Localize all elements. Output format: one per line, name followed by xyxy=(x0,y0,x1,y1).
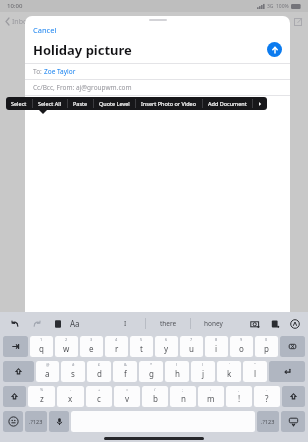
staticText: : xyxy=(210,387,212,392)
button[interactable]: Paste xyxy=(51,317,64,330)
button[interactable]: More xyxy=(253,97,267,110)
button[interactable]: Shift xyxy=(3,386,26,407)
staticText: 10:00 xyxy=(7,2,23,10)
staticText: honey xyxy=(204,319,223,328)
staticText: @ xyxy=(46,362,50,367)
button[interactable]: Cc/Bcc, From: aj@groupwm.com xyxy=(25,80,290,95)
button[interactable]: .?123 xyxy=(257,411,279,432)
button[interactable]: To: xyxy=(25,64,290,79)
button[interactable]: Camera xyxy=(248,317,261,330)
staticText: n xyxy=(181,393,186,404)
button[interactable]: x xyxy=(57,386,84,407)
button[interactable]: j xyxy=(191,361,215,382)
button[interactable]: a xyxy=(36,361,59,382)
button[interactable]: Add Document xyxy=(203,97,252,110)
staticText: & xyxy=(124,362,127,367)
button[interactable]: f xyxy=(113,361,137,382)
button[interactable]: w xyxy=(55,336,78,357)
button[interactable]: i xyxy=(205,336,228,357)
button[interactable]: o xyxy=(230,336,253,357)
staticText: + xyxy=(98,387,101,392)
button[interactable]: Emoji xyxy=(3,411,23,432)
staticText: " xyxy=(254,362,256,367)
button[interactable]: l xyxy=(243,361,267,382)
staticText: ; xyxy=(182,387,184,392)
button[interactable]: u xyxy=(180,336,203,357)
staticText: Select xyxy=(11,100,27,107)
staticText: % xyxy=(40,387,44,392)
button[interactable]: Redo xyxy=(30,317,43,330)
button[interactable]: ? xyxy=(254,386,280,407)
button[interactable]: Shift xyxy=(282,386,305,407)
button[interactable]: m xyxy=(198,386,224,407)
button[interactable]: Shift xyxy=(3,361,34,382)
staticText: l xyxy=(254,368,257,379)
button[interactable]: Undo xyxy=(8,317,21,330)
button[interactable]: I xyxy=(105,312,145,334)
staticText: d xyxy=(97,368,102,379)
button[interactable]: d xyxy=(87,361,111,382)
button[interactable]: Backspace xyxy=(280,336,305,357)
staticText: 3G xyxy=(267,3,274,10)
button[interactable]: p xyxy=(255,336,278,357)
button[interactable]: k xyxy=(217,361,241,382)
button[interactable]: Hide keyboard xyxy=(281,411,305,432)
button[interactable]: v xyxy=(114,386,140,407)
staticText: 100% xyxy=(276,3,289,10)
staticText: 4 xyxy=(115,337,118,342)
staticText: I xyxy=(124,319,127,328)
button[interactable]: Paste xyxy=(68,97,93,110)
button[interactable]: y xyxy=(155,336,178,357)
staticText: Add Document xyxy=(208,100,247,107)
staticText: h xyxy=(175,368,180,379)
button[interactable]: e xyxy=(80,336,103,357)
button[interactable]: Select All xyxy=(33,97,67,110)
button[interactable]: Insert Photo or Video xyxy=(136,97,202,110)
staticText: = xyxy=(126,387,129,392)
button[interactable]: Dictate xyxy=(49,411,69,432)
staticText: Aa xyxy=(70,318,80,329)
staticText: 1 xyxy=(40,337,43,342)
button[interactable]: h xyxy=(165,361,189,382)
button[interactable]: there xyxy=(146,312,190,334)
button[interactable]: g xyxy=(139,361,163,382)
staticText: - xyxy=(70,387,72,392)
button[interactable]: Cancel xyxy=(33,24,57,36)
button[interactable]: Tab xyxy=(3,336,28,357)
staticText: Cc/Bcc, From: aj@groupwm.com xyxy=(33,83,132,92)
staticText: .?123 xyxy=(261,418,275,425)
staticText: t xyxy=(140,343,143,354)
button[interactable]: Document xyxy=(268,317,281,330)
staticText: 5 xyxy=(140,337,143,342)
button[interactable]: Markup xyxy=(288,317,301,330)
staticText: Zoe Taylor xyxy=(44,67,76,76)
staticText: .?123 xyxy=(29,418,43,425)
button[interactable]: r xyxy=(105,336,128,357)
button[interactable]: n xyxy=(170,386,196,407)
button[interactable]: Select xyxy=(6,97,32,110)
staticText: 8 xyxy=(215,337,218,342)
button[interactable]: s xyxy=(61,361,85,382)
staticText: 0 xyxy=(265,337,268,342)
staticText: , xyxy=(238,387,240,392)
button[interactable]: q xyxy=(30,336,53,357)
staticText: . xyxy=(266,387,268,392)
button[interactable]: Aa xyxy=(70,315,80,331)
staticText: 6 xyxy=(165,337,168,342)
button[interactable]: Return xyxy=(269,361,305,382)
staticText: Holiday picture xyxy=(33,41,132,59)
staticText: 2 xyxy=(65,337,68,342)
staticText: b xyxy=(153,393,158,404)
button[interactable]: c xyxy=(86,386,112,407)
button[interactable]: .?123 xyxy=(25,411,47,432)
staticText: a xyxy=(45,368,50,379)
button[interactable]: ! xyxy=(226,386,252,407)
button[interactable]: honey xyxy=(191,312,235,334)
button[interactable]: z xyxy=(28,386,55,407)
button[interactable]: Quote Level xyxy=(94,97,135,110)
button[interactable]: b xyxy=(142,386,168,407)
button[interactable]: Send xyxy=(267,42,282,57)
staticText: Paste xyxy=(73,100,88,107)
button[interactable]: t xyxy=(130,336,153,357)
